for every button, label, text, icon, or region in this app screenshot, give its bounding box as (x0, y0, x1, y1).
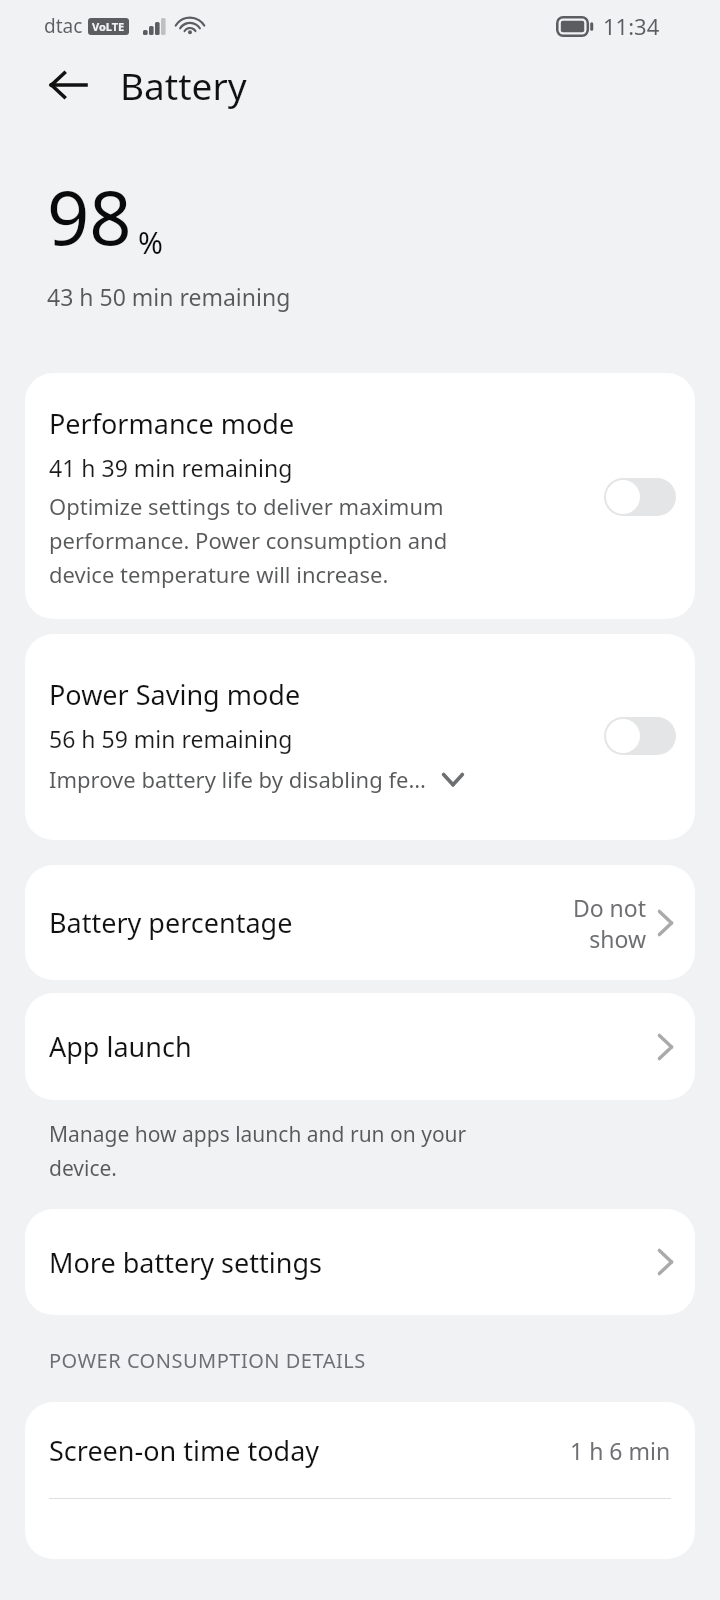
staticText: Battery (120, 60, 247, 110)
button[interactable]: Expand (436, 762, 470, 796)
staticText: 41 h 39 min remaining (49, 452, 293, 483)
staticText: VoLTE (92, 19, 125, 34)
button[interactable]: Battery percentage (25, 865, 695, 980)
staticText: dtac (44, 13, 83, 39)
staticText: 1 h 6 min (570, 1435, 671, 1466)
staticText: Improve battery life by disabling fe… (49, 764, 426, 794)
staticText: 11:34 (603, 11, 660, 41)
staticText: Optimize settings to deliver maximum per… (49, 491, 448, 589)
staticText: show (589, 923, 646, 954)
staticText: Battery percentage (49, 904, 572, 941)
staticText: 43 h 50 min remaining (47, 281, 291, 312)
button[interactable]: More battery settings (25, 1209, 695, 1315)
staticText: Power Saving mode (49, 676, 301, 713)
staticText: Screen-on time today (49, 1432, 570, 1469)
button[interactable]: Screen-on time today (25, 1402, 695, 1498)
button[interactable]: Toggle (603, 477, 677, 517)
button[interactable]: Power Saving mode (25, 634, 695, 840)
staticText: App launch (49, 1028, 656, 1065)
staticText: 98 (47, 166, 132, 267)
button[interactable]: Back (40, 57, 96, 113)
staticText: More battery settings (49, 1244, 656, 1281)
button[interactable]: Toggle (603, 716, 677, 756)
staticText: Do not (572, 892, 646, 923)
staticText: POWER CONSUMPTION DETAILS (49, 1347, 366, 1374)
staticText: Manage how apps launch and run on your d… (49, 1120, 467, 1182)
staticText: Performance mode (49, 405, 295, 442)
staticText: % (138, 222, 163, 263)
staticText: 56 h 59 min remaining (49, 723, 293, 754)
button[interactable]: Performance mode (25, 373, 695, 619)
button[interactable]: App launch (25, 993, 695, 1100)
